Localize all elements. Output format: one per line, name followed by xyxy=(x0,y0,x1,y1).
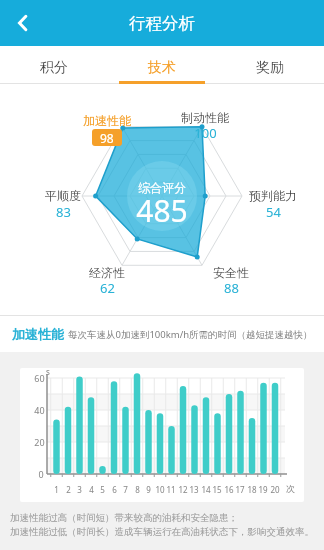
staticText: 积分 xyxy=(40,59,68,77)
staticText: 经济性 xyxy=(89,265,125,280)
staticText: 8 xyxy=(135,484,140,495)
staticText: 15 xyxy=(212,484,222,495)
staticText: s xyxy=(46,366,50,377)
staticText: 每次车速从0加速到100km/h所需的时间（越短提速越快） xyxy=(68,328,313,341)
staticText: 16 xyxy=(224,484,234,495)
staticText: 5 xyxy=(100,484,105,495)
staticText: 1 xyxy=(54,484,59,495)
staticText: 次 xyxy=(286,483,295,494)
staticText: 4 xyxy=(89,484,94,495)
staticText: 20 xyxy=(270,484,280,495)
staticText: 14 xyxy=(201,484,211,495)
staticText: 19 xyxy=(258,484,268,495)
staticText: 13 xyxy=(189,484,199,495)
staticText: 加速性能 xyxy=(83,113,131,128)
staticText: 62 xyxy=(100,279,115,297)
staticText: 12 xyxy=(178,484,188,495)
staticText: 83 xyxy=(56,203,71,221)
staticText: 行程分析 xyxy=(129,13,195,34)
staticText: 6 xyxy=(112,484,117,495)
staticText: 平顺度 xyxy=(45,188,81,203)
staticText: 54 xyxy=(266,203,281,221)
staticText: 18 xyxy=(247,484,257,495)
button[interactable]: 技术 xyxy=(108,46,216,84)
staticText: 20 xyxy=(34,436,45,448)
staticText: 技术 xyxy=(148,59,176,77)
button[interactable]: 奖励 xyxy=(216,46,324,84)
staticText: 98 xyxy=(100,130,114,146)
staticText: 加速性能过高（时间短）带来较高的油耗和安全隐患； 加速性能过低（时间长）造成车辆… xyxy=(10,512,314,538)
button[interactable]: 积分 xyxy=(0,46,108,84)
staticText: 88 xyxy=(224,279,239,297)
staticText: 10 xyxy=(155,484,165,495)
button[interactable] xyxy=(0,0,46,46)
staticText: 60 xyxy=(34,372,45,384)
staticText: 100 xyxy=(194,124,217,142)
staticText: 9 xyxy=(146,484,151,495)
staticText: 加速性能 xyxy=(12,326,64,342)
staticText: 安全性 xyxy=(213,265,249,280)
staticText: 17 xyxy=(235,484,245,495)
staticText: 7 xyxy=(123,484,128,495)
staticText: 3 xyxy=(77,484,82,495)
staticText: 预判能力 xyxy=(249,188,297,203)
staticText: 11 xyxy=(166,484,176,495)
staticText: 485 xyxy=(136,190,188,230)
staticText: 奖励 xyxy=(256,59,284,77)
staticText: 0 xyxy=(38,468,44,480)
staticText: 2 xyxy=(66,484,71,495)
staticText: 制动性能 xyxy=(181,110,229,125)
staticText: 40 xyxy=(34,404,45,416)
staticText: 综合评分 xyxy=(138,180,186,195)
